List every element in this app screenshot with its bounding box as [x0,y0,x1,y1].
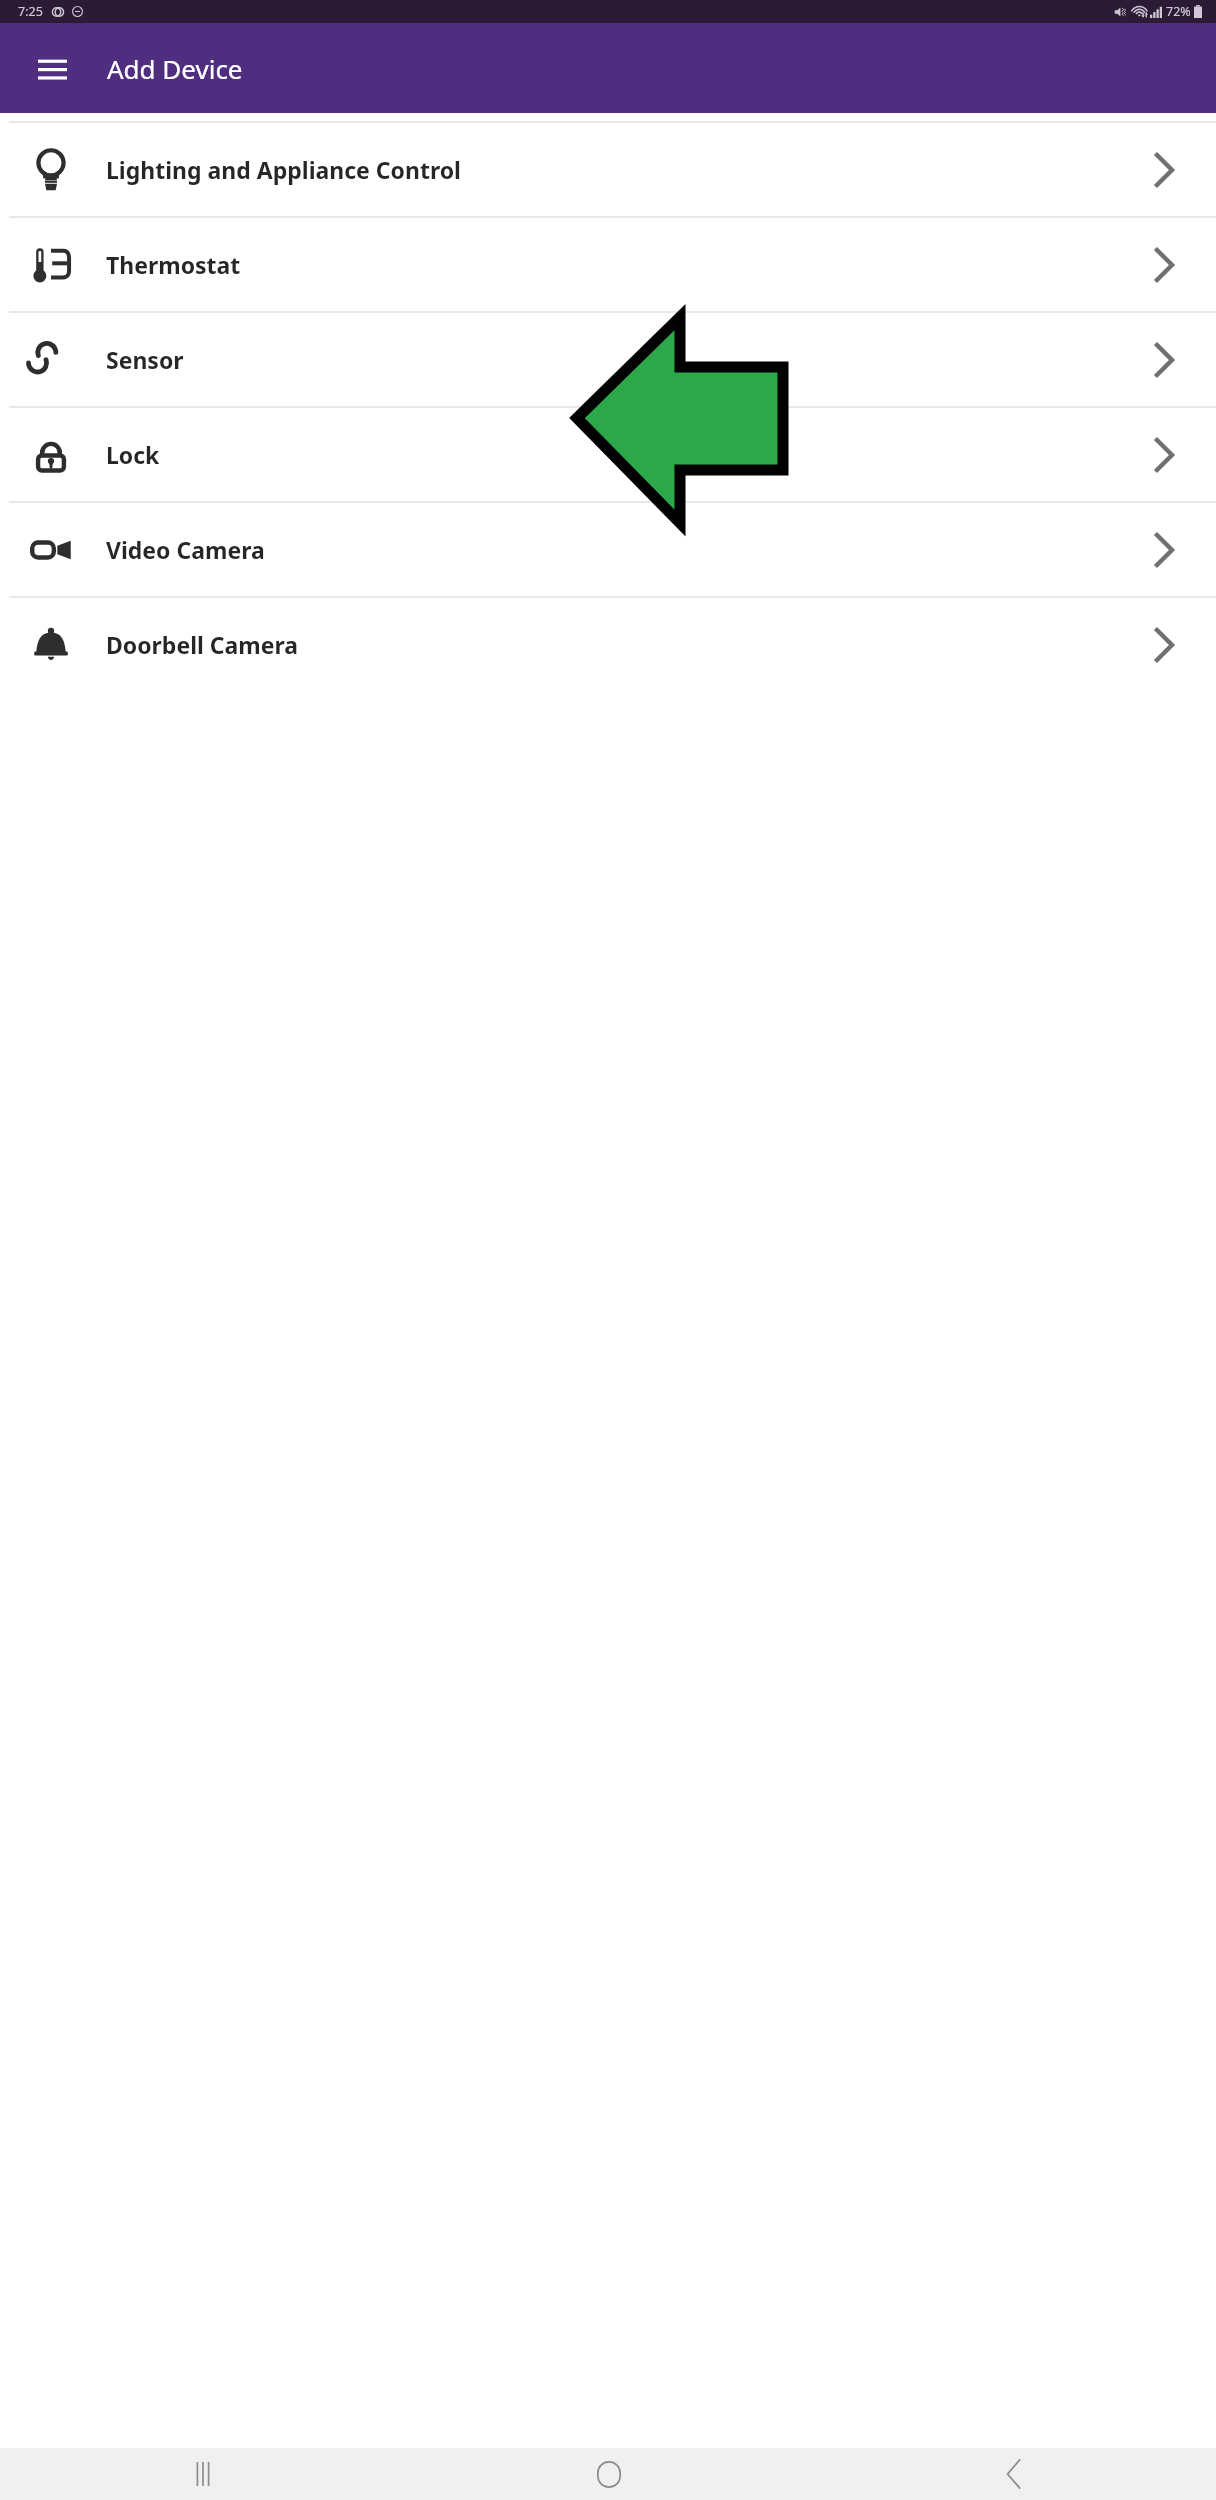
button[interactable]: Back [811,2448,1216,2500]
button[interactable]: Lock [0,408,1216,501]
staticText: Lock [106,439,1144,470]
button[interactable]: Menu [28,44,76,92]
staticText: Lighting and Appliance Control [106,154,1144,185]
button[interactable]: Home [406,2448,811,2500]
staticText: Doorbell Camera [106,629,1144,660]
staticText: Video Camera [106,534,1144,565]
staticText: 72% [1166,3,1191,20]
staticText: 7:25 [18,3,43,20]
button[interactable]: Recents [0,2448,406,2500]
button[interactable]: Doorbell Camera [0,598,1216,691]
button[interactable]: Video Camera [0,503,1216,596]
button[interactable]: Sensor [0,313,1216,406]
staticText: Thermostat [106,249,1144,280]
staticText: Add Device [107,51,243,86]
button[interactable]: Lighting and Appliance Control [0,123,1216,216]
button[interactable]: Thermostat [0,218,1216,311]
staticText: Sensor [106,344,1144,375]
